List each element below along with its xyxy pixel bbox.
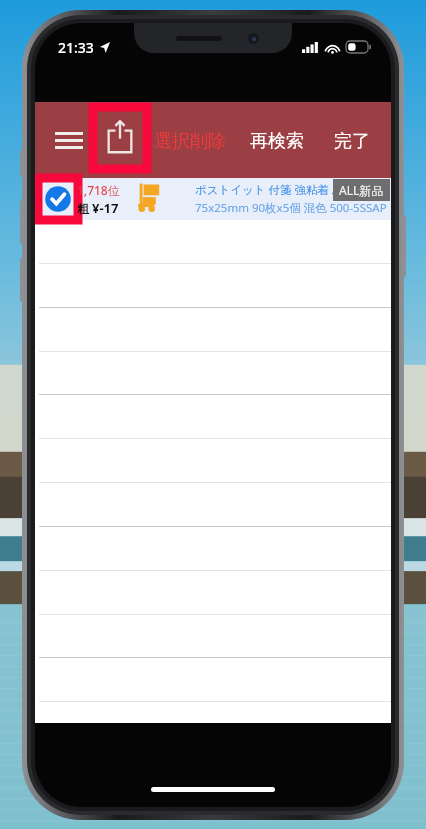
staticText: 75x25mm 90枚x5個 混色 500-5SSAP <box>195 200 387 216</box>
button[interactable]: ALL新品 <box>333 179 390 201</box>
staticText: 粗 <box>77 201 89 216</box>
staticText: ALL新品 <box>339 182 384 198</box>
button[interactable]: Share <box>93 107 147 169</box>
button[interactable]: Selected <box>38 178 78 220</box>
staticText: ¥-17 <box>92 199 119 217</box>
staticText: 選択削除 <box>154 130 226 153</box>
button[interactable]: 完了 <box>327 124 377 159</box>
staticText: ポストイット 付箋 強粘着 ふせん <box>195 182 368 198</box>
staticText: 21:33 <box>58 38 94 57</box>
button[interactable]: Menu <box>47 118 91 162</box>
button[interactable]: 選択削除 <box>147 124 233 159</box>
button[interactable] <box>35 220 391 263</box>
staticText: 完了 <box>334 130 370 153</box>
button[interactable]: Selected <box>35 178 391 220</box>
staticText: 再検索 <box>250 130 304 153</box>
staticText: 1,718位 <box>77 182 120 198</box>
button[interactable]: 再検索 <box>243 124 311 159</box>
